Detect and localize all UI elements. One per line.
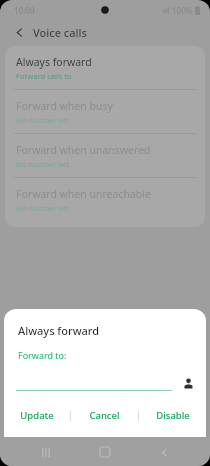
button[interactable]: Home xyxy=(92,439,118,465)
button[interactable]: Recent apps xyxy=(33,439,59,465)
staticText: 10:00 xyxy=(14,5,35,16)
staticText: Forward when unreachable xyxy=(16,187,151,201)
button[interactable]: Back xyxy=(10,23,28,41)
button[interactable]: Cancel xyxy=(71,404,138,427)
staticText: Forward calls to xyxy=(16,71,72,81)
staticText: Forward to: xyxy=(18,349,67,361)
staticText: 100% xyxy=(172,5,193,16)
staticText: No number set xyxy=(16,159,69,169)
staticText: Voice calls xyxy=(33,25,87,40)
staticText: Update xyxy=(20,409,54,422)
staticText: Forward when unanswered xyxy=(16,143,151,157)
staticText: Always forward xyxy=(16,55,92,69)
staticText: Always forward xyxy=(18,323,100,338)
staticText: Forward when busy xyxy=(16,99,113,113)
button[interactable]: Forward when unanswered xyxy=(5,134,205,177)
button[interactable]: Forward when busy xyxy=(5,90,205,133)
button[interactable]: Forward when unreachable xyxy=(5,178,205,221)
button[interactable]: Update xyxy=(4,404,70,427)
button[interactable]: Back xyxy=(151,439,177,465)
staticText: No number set xyxy=(16,203,69,213)
staticText: Cancel xyxy=(89,409,120,422)
button[interactable]: Disable xyxy=(139,404,206,427)
staticText: No number set xyxy=(16,115,69,125)
button[interactable]: Always forward xyxy=(5,46,205,89)
button[interactable]: Select contact xyxy=(180,375,196,391)
staticText: Disable xyxy=(156,409,190,422)
